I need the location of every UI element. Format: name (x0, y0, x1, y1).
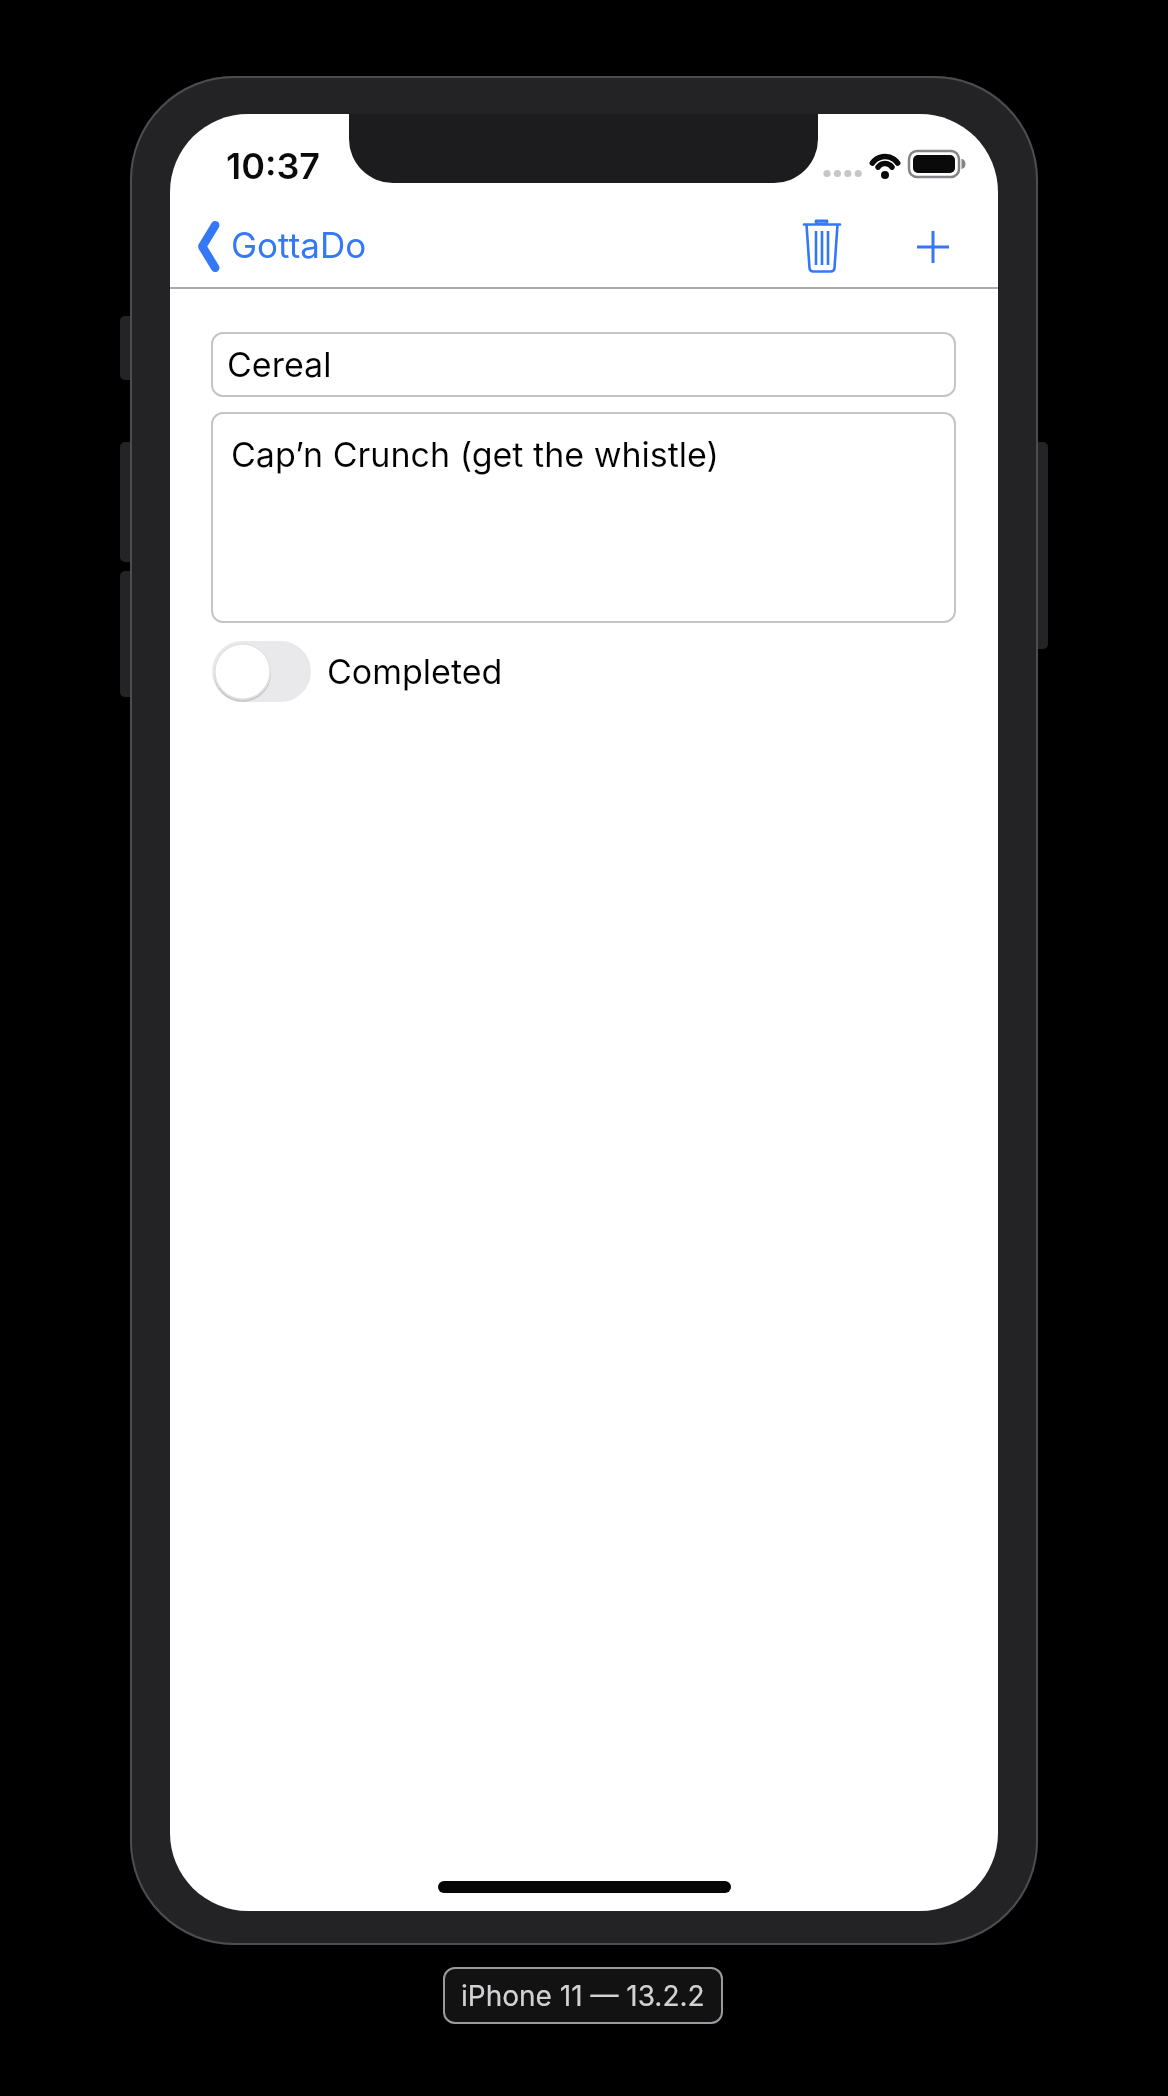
button[interactable] (895, 209, 971, 285)
button[interactable] (212, 641, 311, 702)
staticText: iPhone 11 — 13.2.2 (461, 1979, 705, 2013)
button[interactable]: GottaDo (190, 214, 550, 280)
staticText: 10:37 (226, 144, 321, 188)
staticText: Cap’n Crunch (get the whistle) (231, 434, 719, 475)
staticText: GottaDo (231, 224, 367, 266)
button[interactable] (785, 209, 861, 285)
staticText: Cereal (227, 344, 332, 385)
button[interactable]: Cereal (211, 332, 956, 397)
button[interactable]: Cap’n Crunch (get the whistle) (211, 412, 956, 623)
staticText: Completed (327, 651, 503, 692)
